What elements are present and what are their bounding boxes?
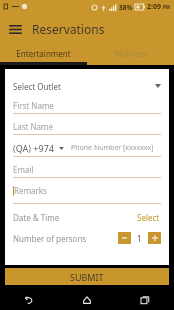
button[interactable]: Recent apps <box>116 289 174 310</box>
staticText: Number of persons <box>13 233 87 244</box>
staticText: Select <box>137 212 160 223</box>
staticText: Last Name <box>13 121 54 132</box>
button[interactable]: Phone Number [xxxxxxx] <box>71 139 161 156</box>
button[interactable]: Select <box>136 212 161 223</box>
button[interactable]: Email <box>13 161 161 177</box>
staticText: (QA) +974 <box>13 142 54 154</box>
staticText: PM <box>163 4 171 10</box>
staticText: Entertainment <box>16 48 71 59</box>
button[interactable]: Increase number of persons <box>148 232 161 244</box>
button[interactable]: Wellness <box>87 44 174 62</box>
staticText: 38% <box>119 3 133 12</box>
staticText: Wellness <box>114 48 148 59</box>
staticText: SUBMIT <box>70 271 104 283</box>
button[interactable]: First Name <box>13 97 161 113</box>
staticText: Email <box>13 164 34 175</box>
staticText: 2:09 <box>147 2 161 12</box>
button[interactable]: Decrease number of persons <box>118 232 131 244</box>
staticText: Remarks <box>14 185 47 196</box>
button[interactable]: Entertainment <box>0 44 87 62</box>
button[interactable]: (QA) +974 <box>13 142 64 154</box>
staticText: Phone Number [xxxxxxx] <box>71 143 154 153</box>
button[interactable]: Back <box>0 289 58 310</box>
button[interactable]: Last Name <box>13 118 161 134</box>
staticText: Reservations <box>32 21 105 37</box>
button[interactable]: Home <box>58 289 116 310</box>
staticText: Date & Time <box>13 212 60 223</box>
staticText: Select Outlet <box>13 81 61 92</box>
button[interactable]: SUBMIT <box>5 268 169 285</box>
staticText: First Name <box>13 100 54 111</box>
button[interactable]: Remarks <box>13 182 161 199</box>
button[interactable]: Select Outlet <box>13 78 161 94</box>
button[interactable]: Open navigation menu <box>6 20 24 38</box>
staticText: 1 <box>137 233 142 244</box>
